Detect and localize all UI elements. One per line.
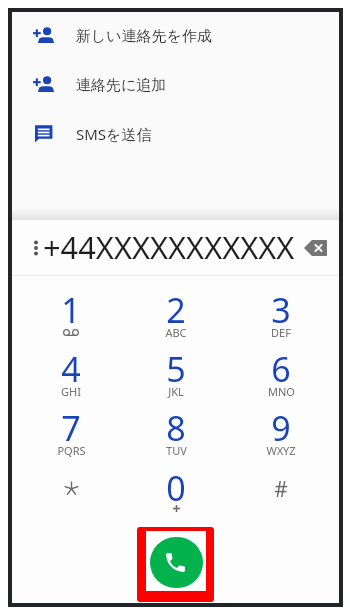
button[interactable]: 5: [142, 344, 210, 400]
button[interactable]: 3: [247, 285, 315, 341]
staticText: 8: [166, 405, 186, 451]
button[interactable]: Backspace: [294, 230, 337, 266]
staticText: JKL: [168, 384, 184, 399]
button[interactable]: 1: [37, 285, 105, 341]
button[interactable]: 6: [247, 344, 315, 400]
staticText: GHI: [61, 384, 81, 399]
button[interactable]: 連絡先に追加: [12, 61, 339, 110]
button[interactable]: 8: [142, 403, 210, 459]
staticText: 3: [271, 287, 291, 333]
button[interactable]: 2: [142, 285, 210, 341]
staticText: 0: [166, 465, 186, 511]
staticText: 6: [271, 346, 291, 392]
staticText: +44XXXXXXXXXXX: [43, 226, 295, 268]
button[interactable]: [37, 463, 105, 519]
button[interactable]: #: [247, 463, 315, 519]
button[interactable]: 9: [247, 403, 315, 459]
button[interactable]: Call: [150, 537, 203, 588]
staticText: #: [274, 475, 288, 504]
staticText: 4: [61, 346, 81, 392]
staticText: 連絡先に追加: [76, 76, 167, 95]
staticText: 5: [166, 346, 186, 392]
button[interactable]: SMSを送信: [12, 109, 339, 158]
staticText: ABC: [165, 325, 187, 340]
staticText: SMSを送信: [76, 124, 152, 144]
button[interactable]: 4: [37, 344, 105, 400]
staticText: 新しい連絡先を作成: [76, 27, 213, 46]
button[interactable]: 7: [37, 403, 105, 459]
staticText: 7: [61, 405, 81, 451]
staticText: WXYZ: [266, 443, 296, 458]
staticText: 2: [166, 287, 186, 333]
button[interactable]: 新しい連絡先を作成: [12, 12, 339, 61]
staticText: 1: [61, 287, 81, 333]
staticText: MNO: [268, 384, 295, 399]
staticText: DEF: [271, 325, 291, 340]
button[interactable]: More options: [20, 231, 54, 265]
staticText: PQRS: [57, 443, 86, 458]
staticText: 9: [271, 405, 291, 451]
button[interactable]: 0: [142, 463, 210, 519]
staticText: TUV: [166, 443, 187, 458]
